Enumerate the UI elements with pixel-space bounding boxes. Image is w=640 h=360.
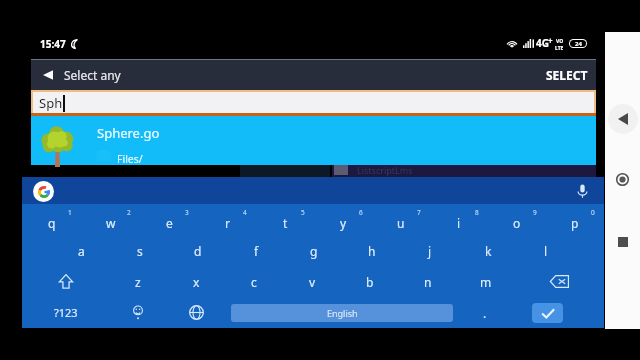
button[interactable]: Sphere.go: [31, 116, 596, 165]
button[interactable]: Select any: [31, 60, 596, 90]
staticText: n: [424, 274, 432, 290]
button[interactable]: j: [401, 235, 459, 266]
button[interactable]: Enter: [532, 303, 563, 323]
button[interactable]: Google search: [31, 179, 55, 203]
staticText: 15:47: [40, 37, 66, 51]
staticText: r: [225, 215, 230, 231]
staticText: k: [485, 243, 492, 259]
button[interactable]: English: [231, 304, 453, 322]
button[interactable]: u: [372, 204, 430, 235]
staticText: q: [48, 215, 56, 231]
staticText: SELECT: [546, 67, 588, 83]
button[interactable]: w: [81, 204, 140, 235]
button[interactable]: r: [198, 204, 256, 235]
button[interactable]: v: [283, 266, 341, 297]
staticText: 5: [301, 208, 305, 217]
staticText: 7: [417, 208, 421, 217]
button[interactable]: ?123: [37, 297, 95, 328]
button[interactable]: l: [517, 235, 575, 266]
staticText: d: [194, 243, 202, 259]
button[interactable]: h: [343, 235, 401, 266]
button[interactable]: a: [52, 235, 111, 266]
staticText: c: [251, 274, 257, 290]
button[interactable]: q: [22, 204, 81, 235]
staticText: English: [327, 307, 358, 319]
button[interactable]: Emoji: [109, 297, 167, 328]
staticText: z: [135, 274, 141, 290]
button[interactable]: Sph: [31, 90, 596, 116]
staticText: b: [366, 274, 374, 290]
staticText: l: [544, 243, 548, 259]
button[interactable]: SELECT: [538, 60, 596, 90]
button[interactable]: m: [457, 266, 515, 297]
staticText: 1: [68, 208, 72, 217]
staticText: e: [166, 215, 173, 231]
button[interactable]: b: [341, 266, 399, 297]
staticText: f: [254, 243, 259, 259]
button[interactable]: s: [111, 235, 169, 266]
staticText: 8: [475, 208, 479, 217]
staticText: 6: [359, 208, 363, 217]
button[interactable]: d: [169, 235, 227, 266]
staticText: t: [283, 215, 288, 231]
staticText: 4G: [536, 36, 549, 50]
staticText: ListscriptLms: [357, 164, 413, 176]
staticText: v: [309, 274, 316, 290]
button[interactable]: y: [314, 204, 372, 235]
button[interactable]: n: [399, 266, 457, 297]
staticText: Files/: [117, 152, 143, 166]
button[interactable]: Change language: [167, 297, 225, 328]
staticText: Select any: [64, 67, 121, 83]
button[interactable]: k: [459, 235, 517, 266]
staticText: m: [480, 274, 492, 290]
button[interactable]: z: [109, 266, 167, 297]
staticText: a: [78, 243, 85, 259]
staticText: 24: [575, 40, 582, 47]
staticText: h: [368, 243, 376, 259]
staticText: .: [483, 305, 487, 321]
button[interactable]: c: [225, 266, 283, 297]
staticText: x: [193, 274, 200, 290]
staticText: j: [428, 243, 432, 259]
staticText: g: [310, 243, 318, 259]
button[interactable]: Voice input: [570, 179, 594, 203]
button[interactable]: i: [430, 204, 488, 235]
button[interactable]: t: [256, 204, 314, 235]
staticText: 2: [127, 208, 131, 217]
button[interactable]: Recent apps: [605, 224, 640, 259]
staticText: w: [106, 215, 116, 231]
staticText: Sph: [39, 94, 63, 112]
staticText: o: [513, 215, 521, 231]
staticText: 4: [243, 208, 247, 217]
button[interactable]: e: [140, 204, 198, 235]
staticText: p: [571, 215, 579, 231]
staticText: 0: [591, 208, 595, 217]
staticText: VO: [556, 38, 564, 45]
button[interactable]: Period: [456, 297, 514, 328]
staticText: 3: [185, 208, 189, 217]
button[interactable]: g: [285, 235, 343, 266]
button[interactable]: o: [488, 204, 546, 235]
button[interactable]: x: [167, 266, 225, 297]
button[interactable]: p: [546, 204, 604, 235]
button[interactable]: f: [227, 235, 285, 266]
button[interactable]: Home: [605, 162, 640, 197]
staticText: s: [137, 243, 143, 259]
staticText: u: [397, 215, 405, 231]
staticText: 9: [533, 208, 537, 217]
staticText: +: [548, 35, 553, 46]
staticText: Sphere.go: [97, 124, 160, 142]
button[interactable]: Backspace: [530, 266, 588, 297]
button[interactable]: Back: [605, 101, 640, 136]
staticText: i: [457, 215, 461, 231]
button[interactable]: Shift: [37, 266, 95, 297]
staticText: ?123: [54, 305, 78, 320]
staticText: LTE: [555, 45, 564, 52]
staticText: y: [340, 215, 347, 231]
